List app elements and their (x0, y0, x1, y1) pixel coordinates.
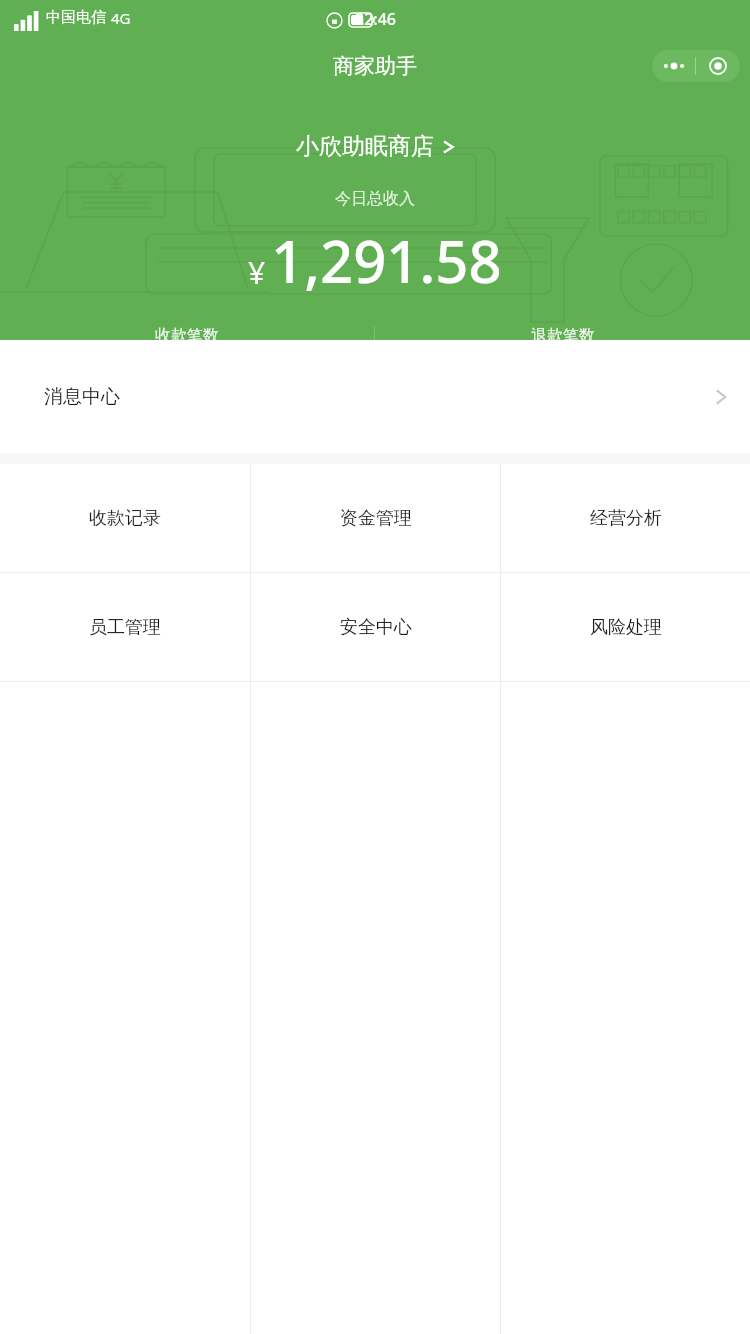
staticText: 中国电信 (46, 8, 106, 27)
staticText: 安全中心 (340, 616, 412, 639)
staticText: 员工管理 (89, 616, 161, 639)
other: More (652, 50, 695, 82)
button[interactable]: 风险处理 (501, 573, 750, 682)
staticText: 经营分析 (590, 507, 662, 530)
other: Close (696, 50, 740, 82)
staticText: 收款记录 (89, 507, 161, 530)
staticText: 风险处理 (590, 616, 662, 639)
button[interactable]: 经营分析 (501, 464, 750, 573)
staticText: 退款笔数 (531, 326, 595, 340)
button[interactable]: 小欣助眠商店 (296, 132, 455, 161)
button[interactable]: 退款笔数 (375, 326, 750, 340)
button[interactable]: 资金管理 (251, 464, 500, 573)
staticText: ¥ (248, 252, 266, 293)
staticText: 22:46 (355, 8, 396, 30)
staticText: 1,291.58 (271, 221, 502, 300)
button[interactable]: 收款笔数 (0, 326, 374, 340)
staticText: 商家助手 (333, 53, 417, 79)
button[interactable]: 收款记录 (0, 464, 250, 573)
button[interactable]: 员工管理 (0, 573, 250, 682)
staticText: 今日总收入 (335, 189, 415, 209)
staticText: 4G (111, 8, 131, 28)
button[interactable]: 安全中心 (251, 573, 500, 682)
staticText: 小欣助眠商店 (296, 132, 434, 161)
staticText: 消息中心 (44, 385, 120, 409)
button[interactable]: More (652, 50, 740, 82)
staticText: 收款笔数 (155, 326, 219, 340)
button[interactable]: 消息中心 (0, 340, 750, 453)
staticText: 资金管理 (340, 507, 412, 530)
